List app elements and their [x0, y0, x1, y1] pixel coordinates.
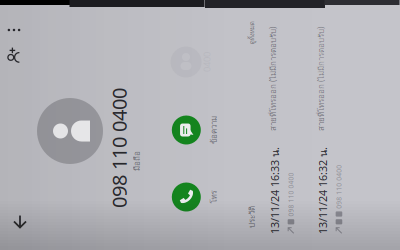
staticText: 13/11/24 16:33 น. [91, 192, 178, 208]
button[interactable]: ข้อความ [165, 97, 225, 145]
staticText: ดูทั้งหมด [280, 172, 303, 182]
staticText: สายที่โทรออก (ไม่มีการตอบรับ) [194, 192, 298, 204]
button[interactable]: 13/11/24 16:33 น. [86, 190, 314, 234]
button[interactable]: ดูทั้งหมด [280, 170, 303, 184]
button[interactable]: 13/11/24 16:32 น. [86, 238, 314, 250]
staticText: ประวัติ [97, 171, 119, 183]
button[interactable]: โทร [98, 97, 158, 145]
staticText: ข้อความ [181, 133, 209, 145]
staticText: 0400 [197, 56, 217, 68]
staticText: โทร [121, 133, 134, 145]
